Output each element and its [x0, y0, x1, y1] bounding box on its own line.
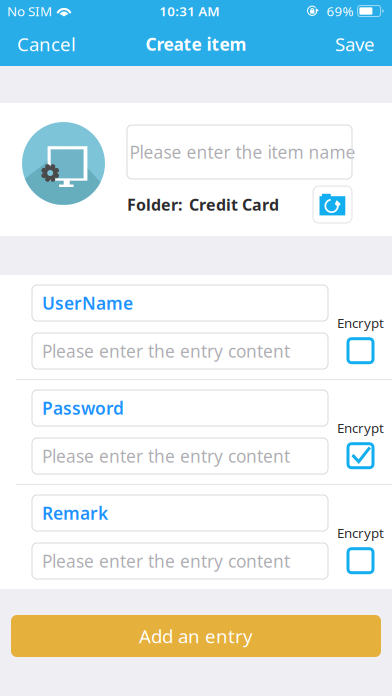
staticText: Password	[42, 396, 124, 419]
staticText: Encrypt	[337, 314, 384, 332]
staticText: No SIM	[7, 2, 52, 20]
button[interactable]: Encrypt	[348, 444, 373, 468]
staticText: Encrypt	[337, 419, 384, 437]
button[interactable]: Save	[321, 22, 392, 66]
staticText: Create item	[145, 32, 246, 55]
staticText: 10:31 AM	[159, 2, 219, 20]
staticText: Cancel	[17, 32, 76, 56]
staticText: Please enter the entry content	[42, 339, 290, 362]
staticText: Add an entry	[139, 624, 253, 648]
staticText: Encrypt	[337, 524, 384, 542]
staticText: Folder:	[127, 194, 182, 215]
staticText: Credit Card	[189, 194, 279, 215]
button[interactable]: Cancel	[0, 22, 90, 66]
staticText: Please enter the entry content	[42, 444, 290, 467]
button[interactable]: Encrypt	[348, 339, 373, 363]
staticText: Please enter the item name	[129, 140, 355, 163]
button[interactable]: Change folder	[313, 186, 352, 223]
staticText: Please enter the entry content	[42, 549, 290, 572]
staticText: 69%	[327, 2, 354, 20]
button[interactable]: Add an entry	[11, 615, 381, 657]
staticText: Remark	[42, 501, 108, 524]
staticText: UserName	[42, 291, 133, 314]
button[interactable]: Encrypt	[348, 549, 373, 573]
staticText: Save	[335, 32, 375, 56]
